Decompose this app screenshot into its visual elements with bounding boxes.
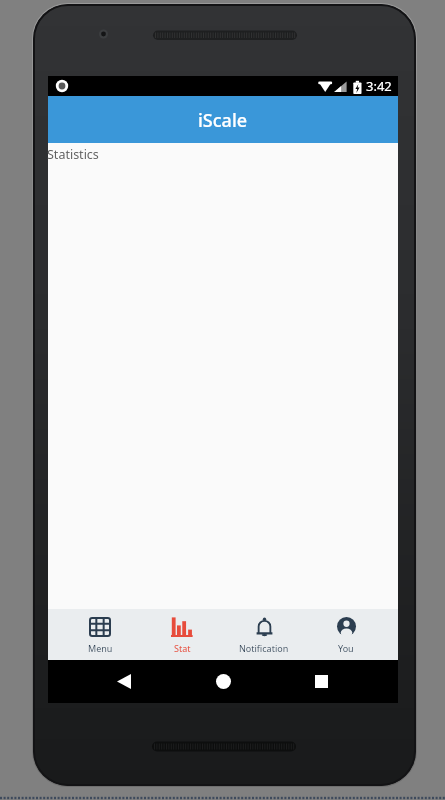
button[interactable]: Stat — [141, 609, 223, 660]
button[interactable]: Back — [108, 665, 140, 697]
button[interactable]: Menu — [59, 609, 141, 660]
button[interactable]: Recents — [305, 665, 337, 697]
staticText: iScale — [198, 108, 248, 133]
staticText: 3:42 — [366, 77, 392, 95]
staticText: Menu — [88, 642, 113, 654]
staticText: Notification — [239, 642, 289, 654]
button[interactable]: Home — [207, 665, 239, 697]
staticText: Statistics — [47, 146, 99, 163]
button[interactable]: You — [305, 609, 387, 660]
button[interactable]: Notification — [223, 609, 305, 660]
staticText: You — [338, 642, 354, 654]
staticText: Stat — [174, 642, 191, 654]
